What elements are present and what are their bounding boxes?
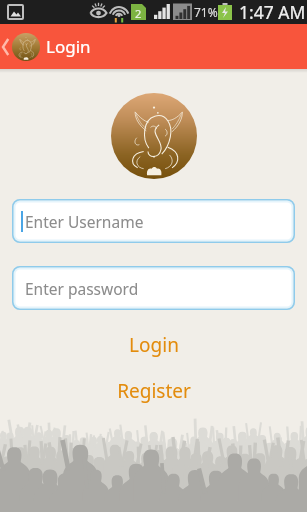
staticText: Enter Username (25, 211, 144, 232)
button[interactable]: Login (0, 331, 307, 359)
staticText: Login (46, 35, 91, 58)
staticText: Login (129, 332, 179, 358)
button[interactable]: Enter password (12, 266, 295, 310)
button[interactable]: Register (0, 377, 307, 405)
staticText: 71% (194, 4, 218, 20)
button[interactable]: Enter Username (12, 199, 295, 243)
staticText: 2 (135, 6, 142, 21)
staticText: Enter password (25, 278, 139, 299)
staticText: 1:47 AM (239, 0, 306, 24)
staticText: Register (117, 378, 191, 404)
button[interactable]: Back (0, 24, 12, 69)
